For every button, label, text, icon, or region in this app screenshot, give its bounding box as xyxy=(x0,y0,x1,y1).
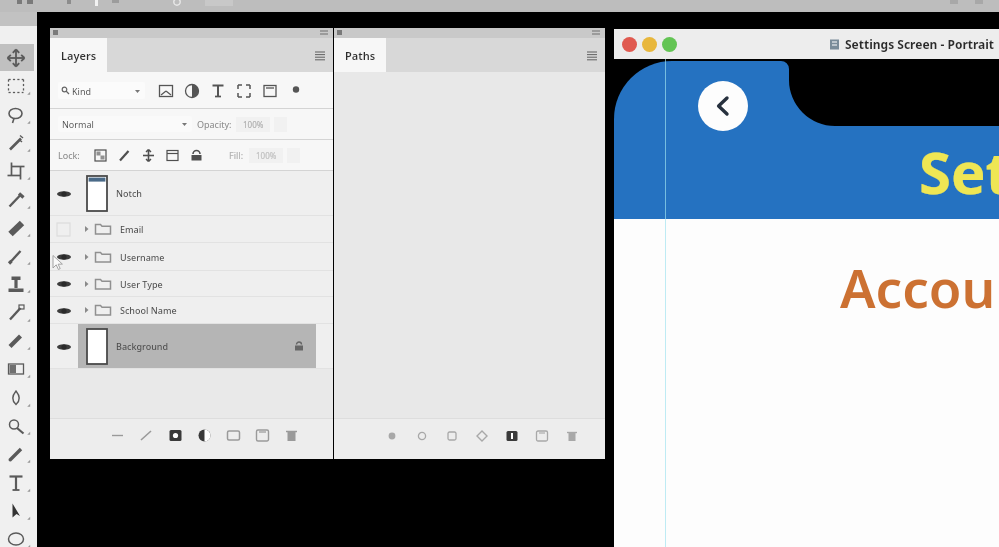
button[interactable]: Maximise xyxy=(662,37,677,52)
button[interactable]: 100% xyxy=(236,117,270,132)
button[interactable]: Layer action 6 xyxy=(281,425,302,446)
staticText: School Name xyxy=(120,304,177,316)
button[interactable]: Close xyxy=(622,37,637,52)
button[interactable]: Eyedropper xyxy=(0,186,34,213)
staticText: Lock: xyxy=(58,149,80,161)
staticText: Background xyxy=(116,340,169,352)
staticText: User Type xyxy=(120,278,163,290)
staticText: Layers xyxy=(61,48,97,63)
button[interactable]: History brush xyxy=(0,299,34,326)
button[interactable]: Shape tool xyxy=(0,525,34,547)
button[interactable]: Lock 3 xyxy=(161,144,183,166)
button[interactable]: Lock 0 xyxy=(89,144,111,166)
button[interactable]: Dodge tool xyxy=(0,412,34,439)
staticText: Paths xyxy=(345,48,376,63)
button[interactable]: Filter 5 xyxy=(283,78,308,103)
button[interactable]: Marquee tool xyxy=(0,72,34,99)
button[interactable]: Minimise xyxy=(642,37,657,52)
button[interactable]: Eraser xyxy=(0,327,34,354)
button[interactable]: Path action 6 xyxy=(561,425,582,446)
button[interactable]: Filter 4 xyxy=(257,78,282,103)
button[interactable]: Layer action 4 xyxy=(223,425,244,446)
button[interactable]: Path action 4 xyxy=(501,425,522,446)
staticText: Account xyxy=(840,251,999,323)
button[interactable]: Lock 4 xyxy=(185,144,207,166)
button[interactable]: Lock 1 xyxy=(113,144,135,166)
button[interactable]: Kind xyxy=(58,82,145,99)
button[interactable]: Notch xyxy=(50,171,333,215)
button[interactable]: Normal xyxy=(58,116,192,132)
button[interactable]: Pen tool xyxy=(0,440,34,467)
button[interactable]: Layers xyxy=(50,38,107,72)
button[interactable]: Background xyxy=(50,324,333,368)
button[interactable]: School Name xyxy=(50,297,333,323)
button[interactable]: Layer action 0 xyxy=(107,425,128,446)
staticText: Username xyxy=(120,251,165,263)
button[interactable]: Back xyxy=(698,81,748,131)
button[interactable]: Healing brush xyxy=(0,214,34,241)
button[interactable]: Crop tool xyxy=(0,157,34,184)
staticText: Kind xyxy=(72,85,91,97)
button[interactable]: Clone stamp xyxy=(0,270,34,297)
staticText: 100% xyxy=(243,119,264,130)
button[interactable]: Lasso tool xyxy=(0,101,34,128)
staticText: Settings Screen - Portrait xyxy=(845,36,995,52)
button[interactable]: Lock 2 xyxy=(137,144,159,166)
button[interactable]: Path action 5 xyxy=(531,425,552,446)
button[interactable]: Path action 3 xyxy=(471,425,492,446)
button[interactable]: User Type xyxy=(50,271,333,296)
staticText: Normal xyxy=(62,118,94,130)
button[interactable]: Filter 2 xyxy=(205,78,230,103)
button[interactable]: Path action 2 xyxy=(441,425,462,446)
button[interactable]: Blur tool xyxy=(0,384,34,411)
button[interactable]: Filter 3 xyxy=(231,78,256,103)
button[interactable]: Email xyxy=(50,216,333,242)
button[interactable]: Gradient xyxy=(0,355,34,382)
button[interactable]: Panel menu xyxy=(313,48,327,62)
button[interactable]: Quick select xyxy=(0,129,34,156)
staticText: Settings xyxy=(919,132,999,211)
button[interactable]: Path action 0 xyxy=(381,425,402,446)
button[interactable]: Type tool xyxy=(0,469,34,496)
staticText: Notch xyxy=(116,187,142,199)
staticText: 100% xyxy=(256,150,277,161)
button[interactable]: Layer action 2 xyxy=(165,425,186,446)
button[interactable]: Panel menu xyxy=(585,48,599,62)
button[interactable]: Path action 1 xyxy=(411,425,432,446)
button[interactable]: Brush tool xyxy=(0,242,34,269)
button[interactable]: Filter 1 xyxy=(179,78,204,103)
staticText: Fill: xyxy=(229,149,244,161)
button[interactable]: Filter 0 xyxy=(153,78,178,103)
button[interactable]: Layer action 1 xyxy=(136,425,157,446)
staticText: Opacity: xyxy=(197,118,232,130)
button[interactable]: Layer action 5 xyxy=(252,425,273,446)
button[interactable]: Layer action 3 xyxy=(194,425,215,446)
button[interactable]: Paths xyxy=(334,38,386,72)
button[interactable]: Lock layer xyxy=(291,338,307,354)
button[interactable]: Path select xyxy=(0,497,34,524)
staticText: Email xyxy=(120,223,144,235)
button[interactable]: Move tool xyxy=(0,44,34,71)
button[interactable]: Username xyxy=(50,243,333,270)
